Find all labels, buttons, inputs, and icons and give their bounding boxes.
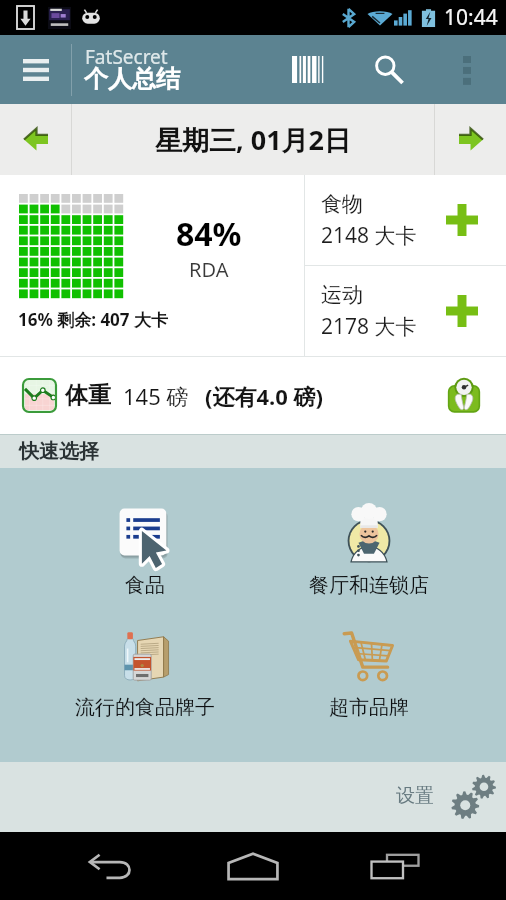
button[interactable]: 体重 <box>0 357 506 434</box>
staticText: FatSecret <box>85 44 168 70</box>
button[interactable]: 食品 <box>35 503 255 598</box>
staticText: 体重 <box>65 381 111 410</box>
staticText: 超市品牌 <box>329 695 409 720</box>
button[interactable]: Scan barcode <box>268 35 349 104</box>
button[interactable]: 流行的食品牌子 <box>35 625 255 720</box>
button[interactable]: 餐厅和连锁店 <box>259 503 479 598</box>
staticText: 运动 <box>321 282 363 308</box>
button[interactable]: Back <box>70 832 154 900</box>
staticText: 145 磅 <box>123 381 189 411</box>
button[interactable]: Menu <box>0 35 71 104</box>
staticText: (还有4.0 磅) <box>205 381 323 411</box>
staticText: 16% 剩余: 407 大卡 <box>18 308 168 331</box>
button[interactable]: Home <box>211 832 295 900</box>
button[interactable]: Search <box>349 35 427 104</box>
button[interactable]: Weigh in <box>445 377 483 415</box>
staticText: 食品 <box>125 573 165 598</box>
staticText: 快速选择 <box>19 439 99 464</box>
staticText: 星期三, 01月2日 <box>155 121 352 158</box>
staticText: 10:44 <box>444 3 498 32</box>
staticText: 设置 <box>396 784 434 808</box>
staticText: 个人总结 <box>84 64 180 94</box>
staticText: 84% <box>176 212 242 256</box>
button[interactable]: Next day <box>435 104 506 175</box>
button[interactable]: 运动 <box>305 266 506 356</box>
staticText: RDA <box>189 256 229 283</box>
button[interactable]: 超市品牌 <box>259 625 479 720</box>
button[interactable]: 食物 <box>305 175 506 265</box>
button[interactable]: More options <box>427 35 506 104</box>
button[interactable]: Recent apps <box>353 832 437 900</box>
staticText: 食物 <box>321 191 363 217</box>
staticText: 流行的食品牌子 <box>75 695 215 720</box>
staticText: 2178 大卡 <box>321 312 417 341</box>
staticText: 餐厅和连锁店 <box>309 573 429 598</box>
button[interactable]: 设置 <box>396 775 495 817</box>
staticText: 2148 大卡 <box>321 221 417 250</box>
button[interactable]: Previous day <box>0 104 71 175</box>
